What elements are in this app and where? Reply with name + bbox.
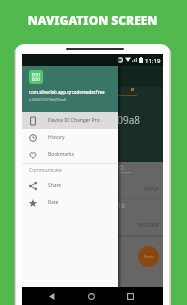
staticText: APPLY: [144, 186, 159, 193]
button[interactable]: Bookmarks: [22, 146, 118, 163]
button[interactable]: Rate: [22, 194, 118, 211]
staticText: 0f7a1770: [93, 163, 124, 173]
button[interactable]: RESTORE: [134, 219, 164, 232]
staticText: c3de09a8: [95, 113, 141, 127]
button[interactable]: Redo: [138, 246, 159, 267]
staticText: Rate: [48, 199, 59, 206]
button[interactable]: Recent apps: [121, 287, 140, 305]
button[interactable]: Home: [82, 287, 101, 305]
staticText: Communicate: [29, 167, 62, 174]
staticText: NAVIGATION SCREEN: [0, 12, 186, 28]
button[interactable]: History: [22, 129, 118, 146]
staticText: com.silverlab.app.qrcodereader.free: [29, 89, 105, 95]
staticText: Share: [48, 182, 62, 189]
staticText: 7a9c51b: [98, 201, 126, 211]
button[interactable]: APPLY: [140, 183, 163, 196]
staticText: RESTORE: [138, 222, 160, 229]
staticText: Bookmarks: [48, 151, 74, 158]
button[interactable]: Back: [43, 287, 62, 305]
button[interactable]: Share: [22, 177, 118, 194]
staticText: History: [48, 134, 65, 141]
staticText: a168275379bb09ea8: [29, 97, 67, 102]
staticText: Device ID Changer Pro: [48, 117, 100, 124]
button[interactable]: Device ID Changer Pro: [22, 112, 118, 129]
staticText: Redo: [144, 254, 154, 259]
staticText: 11:19: [145, 57, 161, 65]
